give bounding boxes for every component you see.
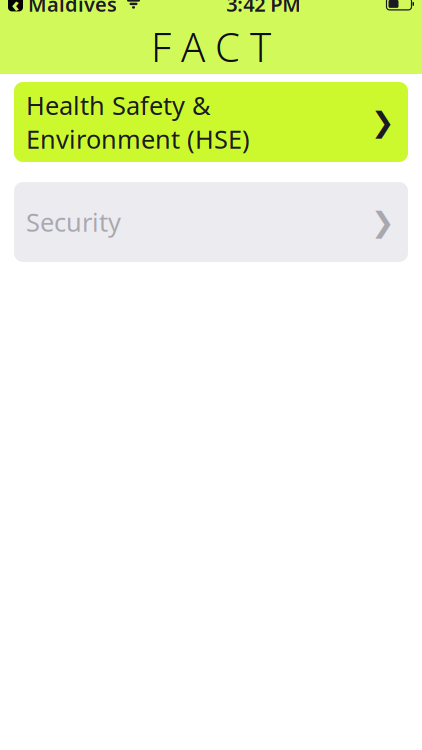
staticText: Security (26, 205, 121, 239)
staticText: Maldives (28, 0, 117, 17)
staticText: F A C T (151, 20, 271, 73)
staticText: ‹ (11, 0, 19, 17)
staticText: Health Safety & Environment (HSE) (26, 88, 250, 156)
staticText: 3:42 PM (226, 0, 301, 17)
staticText: ❯ (371, 206, 394, 238)
staticText: ❯ (371, 106, 394, 138)
button[interactable]: Health Safety & Environment (HSE) (14, 82, 408, 162)
button[interactable]: Security (14, 182, 408, 262)
